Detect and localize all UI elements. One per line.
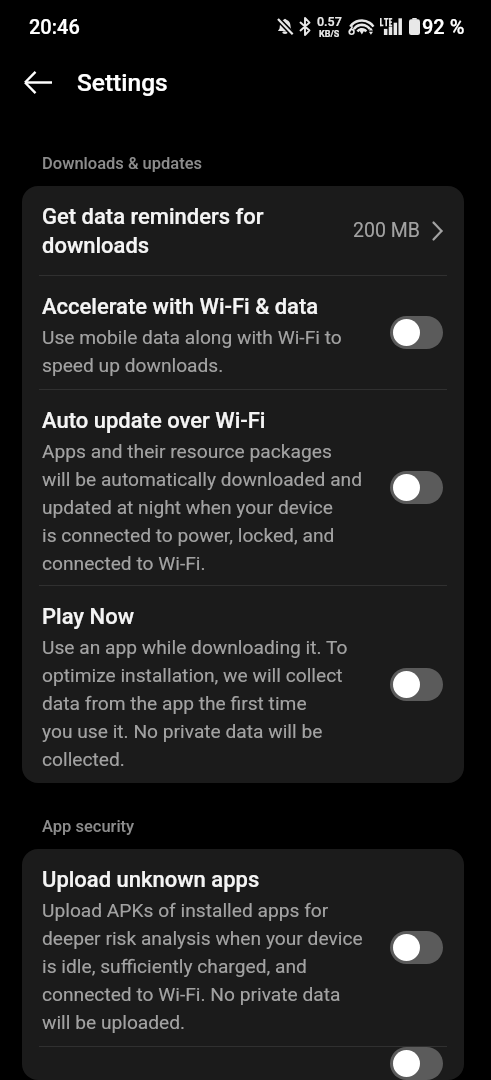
button[interactable]: Toggle setting — [390, 931, 443, 964]
staticText: Upload APKs of installed apps for deeper… — [42, 895, 363, 1035]
staticText: 0.57 — [317, 14, 342, 29]
staticText: Use an app while downloading it. To opti… — [42, 632, 348, 772]
staticText: Apps and their resource packages will be… — [42, 436, 363, 576]
staticText: Accelerate with Wi-Fi & data — [42, 291, 319, 320]
button[interactable]: Toggle setting — [390, 1047, 443, 1080]
staticText: Downloads & updates — [42, 153, 203, 173]
button[interactable]: Automatically detect risky apps — [22, 1047, 464, 1080]
staticText: KB/S — [319, 29, 340, 39]
button[interactable]: Upload unknown apps — [22, 849, 464, 1046]
button[interactable]: Accelerate with Wi-Fi & data — [22, 276, 464, 389]
staticText: Auto update over Wi-Fi — [42, 405, 266, 434]
staticText: 200 MB — [353, 219, 420, 242]
staticText: 20:46 — [29, 15, 80, 38]
button[interactable]: Get data reminders for downloads — [22, 186, 464, 275]
staticText: App security — [42, 816, 135, 836]
button[interactable]: Toggle setting — [390, 471, 443, 504]
staticText: Settings — [77, 68, 168, 97]
button[interactable]: Toggle setting — [390, 668, 443, 701]
button[interactable]: Play Now — [22, 586, 464, 783]
staticText: 92 % — [422, 15, 465, 38]
button[interactable]: Toggle setting — [390, 316, 443, 349]
staticText: Use mobile data along with Wi-Fi to spee… — [42, 322, 342, 378]
button[interactable]: Back — [14, 58, 62, 106]
staticText: Upload unknown apps — [42, 864, 260, 893]
staticText: Play Now — [42, 601, 135, 630]
staticText: Get data reminders for downloads — [42, 201, 264, 259]
button[interactable]: Auto update over Wi-Fi — [22, 390, 464, 585]
